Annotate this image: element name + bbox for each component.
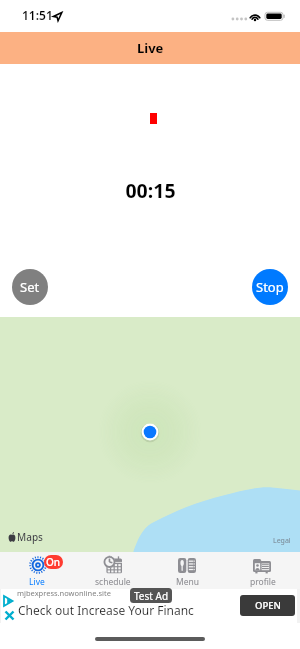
staticText: Stop [256, 278, 284, 296]
other: Ad choices [3, 595, 14, 607]
other: Menu [178, 558, 196, 573]
button[interactable]: OPEN [240, 595, 295, 616]
staticText: schedule [95, 576, 131, 588]
other: profile [253, 559, 271, 573]
button[interactable]: mjbexpress.nowonline.site [1, 589, 297, 623]
other: Live [29, 556, 47, 574]
other: Close ad [4, 610, 15, 621]
staticText: Maps [17, 530, 43, 544]
staticText: OPEN [255, 599, 281, 612]
staticText: mjbexpress.nowonline.site [17, 588, 111, 598]
button[interactable]: Live [0, 552, 75, 589]
staticText: Live [29, 576, 45, 588]
button[interactable]: Menu [150, 552, 225, 589]
staticText: Check out Increase Your Financ [18, 602, 194, 618]
button[interactable]: schedule [75, 552, 150, 589]
button[interactable]: profile [225, 552, 300, 589]
staticText: 00:15 [125, 177, 176, 204]
staticText: Legal [273, 536, 291, 546]
staticText: On [46, 555, 61, 569]
button[interactable]: Set [12, 269, 48, 305]
staticText: Set [20, 278, 40, 296]
button[interactable]: Stop [252, 269, 288, 305]
staticText: 11:51 [22, 7, 53, 23]
staticText: Menu [176, 576, 200, 588]
staticText: Live [137, 39, 164, 57]
other: schedule [103, 556, 122, 574]
staticText: Test Ad [134, 589, 169, 603]
staticText: profile [250, 576, 276, 588]
